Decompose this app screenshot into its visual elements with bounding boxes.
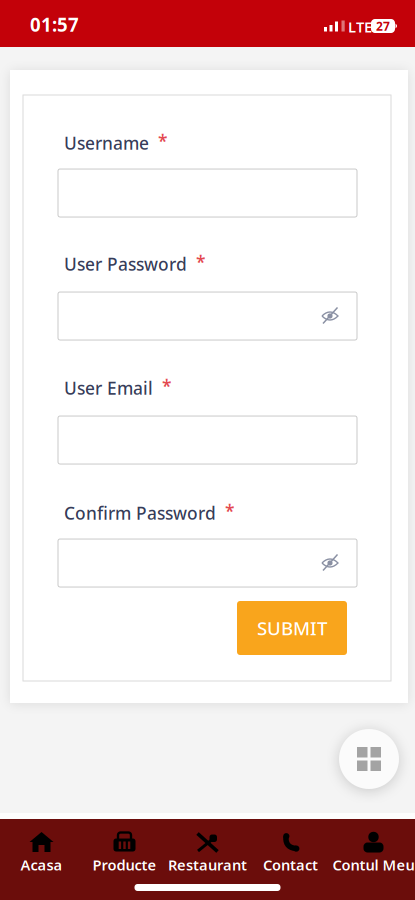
staticText: * [196,250,205,273]
staticText: * [158,129,167,152]
staticText: Contul Meu [332,855,414,874]
staticText: SUBMIT [257,616,327,640]
button[interactable]: Show password [321,307,357,325]
staticText: 01:57 [30,12,79,37]
staticText: 27 [376,18,390,34]
staticText: User Password [64,252,187,275]
button[interactable]: Contact [249,832,332,874]
staticText: LTE [348,17,372,36]
staticText: Producte [92,855,156,874]
staticText: Username [64,131,149,154]
button[interactable]: Menu [339,729,399,789]
button[interactable]: Producte [83,832,166,874]
staticText: * [225,499,234,522]
staticText: User Email [64,376,153,399]
staticText: Confirm Password [64,501,216,524]
button[interactable]: Show password [321,554,357,572]
staticText: Restaurant [168,855,247,874]
button[interactable]: SUBMIT [237,601,347,655]
button[interactable]: Acasa [0,832,83,874]
button[interactable]: Restaurant [166,832,249,874]
staticText: Contact [263,855,318,874]
staticText: * [162,374,171,397]
staticText: Acasa [20,855,62,874]
button[interactable]: Contul Meu [332,832,415,874]
